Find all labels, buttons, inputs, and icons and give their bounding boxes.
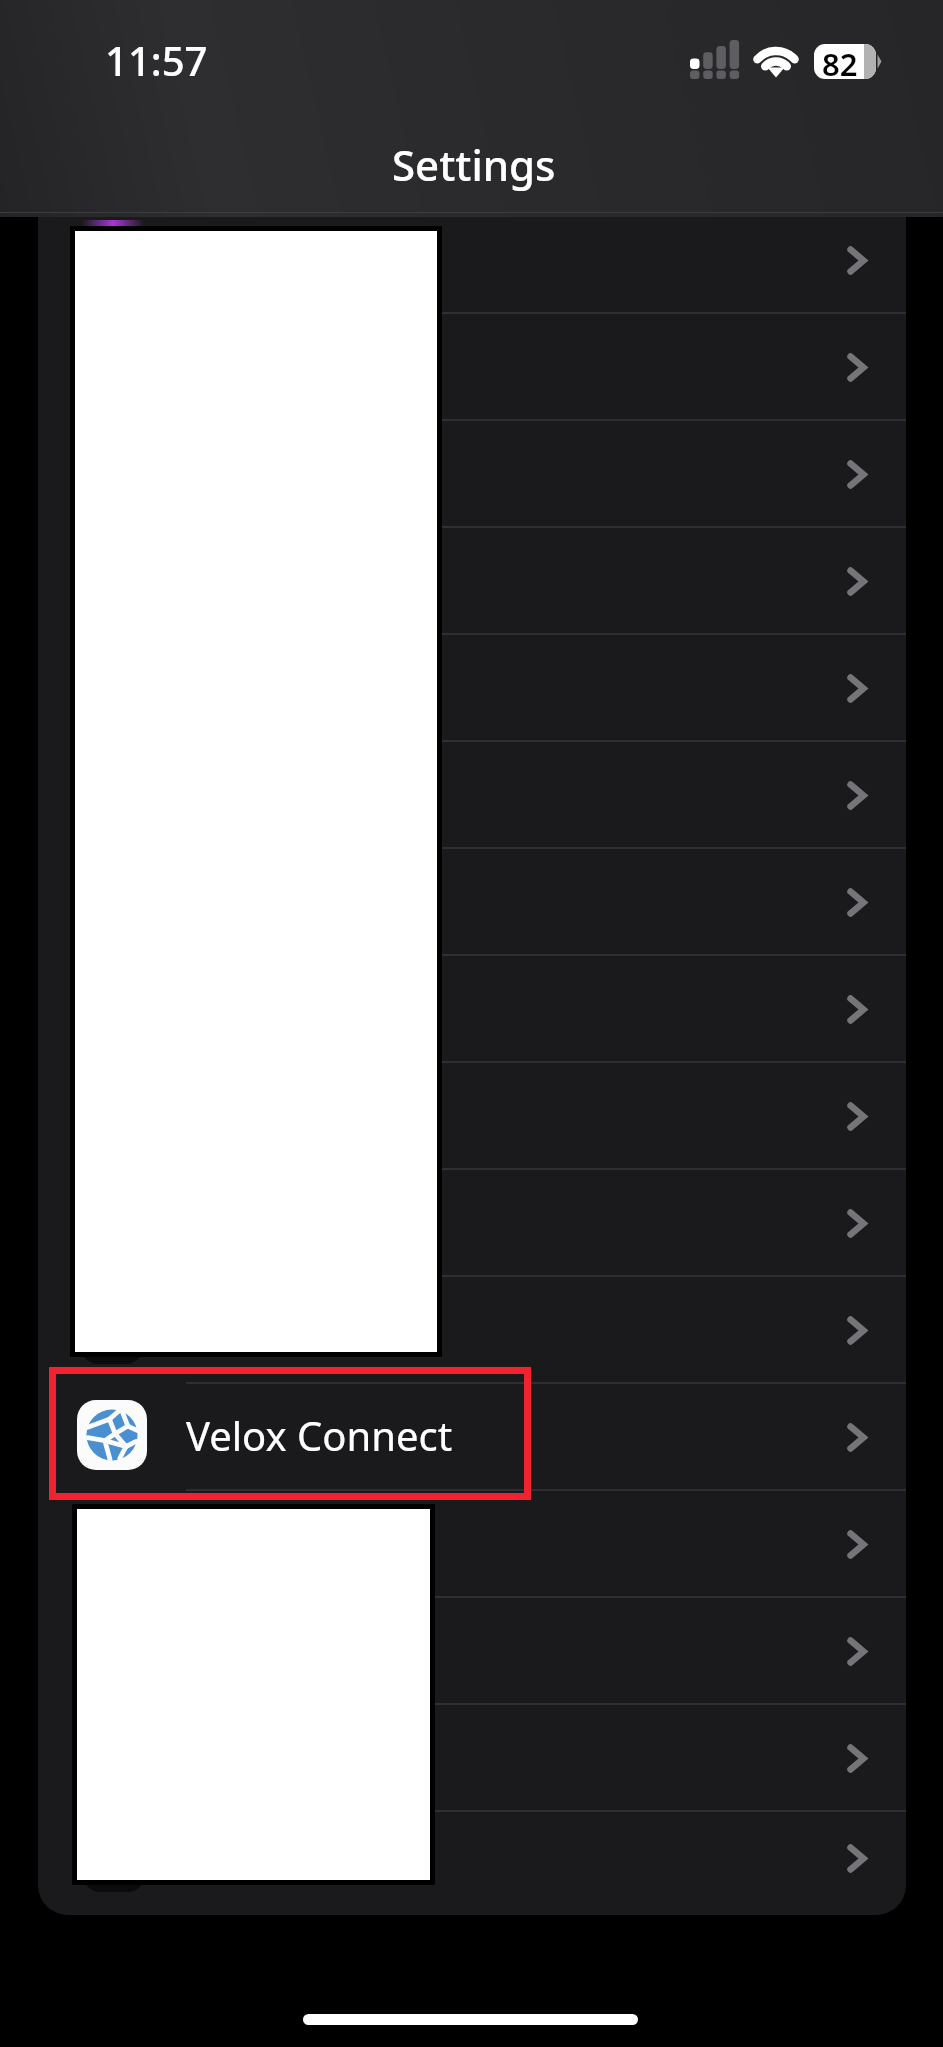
button[interactable]: Settings item [38, 421, 906, 528]
button[interactable]: Settings item [38, 742, 906, 849]
button[interactable]: Velox Connect [38, 1384, 906, 1491]
button[interactable]: Settings item [38, 956, 906, 1063]
staticText: 11:57 [105, 33, 208, 87]
staticText: 82 [822, 43, 858, 78]
button[interactable]: Settings item [38, 217, 906, 314]
button[interactable]: Settings item [38, 1277, 906, 1384]
button[interactable]: Settings item [38, 314, 906, 421]
staticText: Velox Connect [186, 1408, 453, 1462]
button[interactable]: Settings item [38, 1705, 906, 1812]
button[interactable]: Settings item [38, 1491, 906, 1598]
button[interactable]: Settings item [38, 635, 906, 742]
staticText: Settings [392, 136, 556, 193]
button[interactable]: Settings item [38, 1812, 906, 1905]
button[interactable]: Settings item [38, 1598, 906, 1705]
button[interactable]: Settings item [38, 528, 906, 635]
button[interactable]: Settings item [38, 849, 906, 956]
button[interactable]: Settings item [38, 1063, 906, 1170]
button[interactable]: Settings item [38, 1170, 906, 1277]
